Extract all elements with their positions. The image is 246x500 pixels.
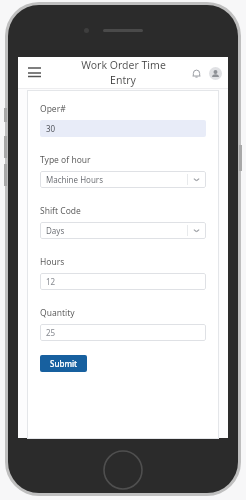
- staticText: Quantity: [40, 307, 75, 319]
- staticText: 12: [46, 276, 56, 287]
- staticText: Work Order Time: [81, 58, 166, 72]
- button[interactable]: 30: [40, 120, 206, 137]
- staticText: 25: [46, 327, 56, 338]
- staticText: Shift Code: [40, 205, 81, 217]
- button[interactable]: Account: [209, 67, 222, 80]
- button[interactable]: Days: [40, 222, 206, 239]
- button[interactable]: Machine Hours: [40, 171, 206, 188]
- staticText: Submit: [50, 358, 78, 369]
- staticText: 30: [46, 123, 56, 134]
- staticText: Oper#: [40, 103, 66, 115]
- staticText: Days: [46, 225, 65, 236]
- button[interactable]: Menu: [23, 62, 45, 84]
- staticText: Entry: [110, 73, 136, 87]
- button[interactable]: Notifications: [187, 64, 205, 82]
- staticText: Type of hour: [40, 154, 91, 166]
- staticText: Hours: [40, 256, 65, 268]
- staticText: Machine Hours: [46, 174, 103, 185]
- button[interactable]: 25: [40, 324, 206, 341]
- button[interactable]: 12: [40, 273, 206, 290]
- button[interactable]: Submit: [40, 355, 87, 372]
